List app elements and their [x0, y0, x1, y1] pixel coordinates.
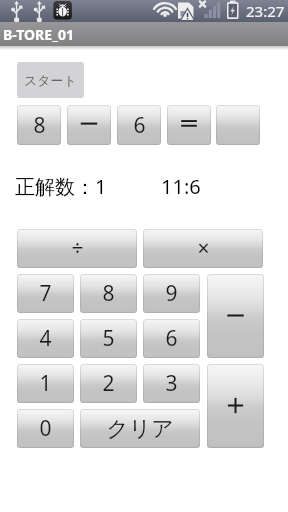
staticText: B-TORE_01: [3, 25, 74, 44]
staticText: 正解数：1: [15, 173, 107, 200]
button[interactable]: plus: [207, 364, 264, 448]
staticText: スタート: [24, 72, 77, 88]
staticText: 9: [165, 279, 178, 308]
button[interactable]: スタート: [17, 62, 84, 98]
button[interactable]: 3: [143, 364, 200, 403]
staticText: 5: [102, 324, 115, 353]
button[interactable]: 8: [80, 274, 137, 313]
staticText: 4: [39, 324, 52, 353]
staticText: 8: [102, 279, 115, 308]
button[interactable]: minus: [67, 105, 111, 145]
button[interactable]: 4: [17, 319, 74, 358]
staticText: ×: [197, 234, 210, 263]
staticText: ÷: [71, 234, 84, 263]
staticText: 1: [39, 369, 52, 398]
button[interactable]: ×: [143, 229, 263, 268]
button[interactable]: 2: [80, 364, 137, 403]
staticText: 11:6: [161, 173, 201, 200]
button[interactable]: 1: [17, 364, 74, 403]
staticText: 2: [102, 369, 115, 398]
staticText: 0: [39, 414, 52, 443]
button[interactable]: 8: [17, 105, 61, 145]
staticText: 3: [165, 369, 178, 398]
button[interactable]: ÷: [17, 229, 137, 268]
staticText: クリア: [106, 415, 174, 443]
button[interactable]: 6: [117, 105, 161, 145]
button[interactable]: minus: [207, 274, 264, 358]
staticText: 6: [165, 324, 178, 353]
button[interactable]: 6: [143, 319, 200, 358]
button[interactable]: 9: [143, 274, 200, 313]
button[interactable]: 0: [17, 409, 74, 448]
button[interactable]: equals: [167, 105, 211, 145]
button[interactable]: クリア: [80, 409, 200, 448]
button[interactable]: 5: [80, 319, 137, 358]
staticText: 6: [133, 111, 146, 140]
staticText: 23:27: [246, 1, 285, 21]
staticText: 8: [33, 111, 46, 140]
button[interactable]: 7: [17, 274, 74, 313]
button[interactable]: [216, 105, 260, 145]
staticText: 7: [39, 279, 52, 308]
